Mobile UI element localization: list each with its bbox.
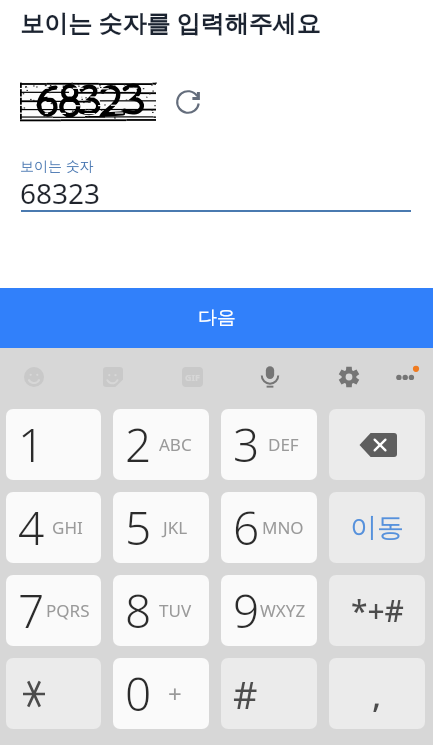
staticText: 2 — [125, 413, 152, 476]
button[interactable]: 2 — [113, 409, 209, 480]
button[interactable] — [6, 658, 101, 729]
staticText: 4 — [18, 496, 45, 559]
button[interactable]: 7 — [6, 575, 101, 646]
staticText: PQRS — [46, 599, 90, 622]
button[interactable]: , — [329, 658, 425, 729]
button[interactable]: Stickers — [91, 358, 135, 396]
staticText: ABC — [159, 433, 192, 456]
staticText: 0 — [125, 662, 152, 725]
staticText: GIF — [185, 371, 200, 383]
staticText: *+# — [351, 590, 404, 631]
staticText: GHI — [52, 516, 83, 539]
button[interactable]: 다음 — [0, 288, 433, 348]
staticText: 보이는 숫자를 입력해주세요 — [20, 6, 321, 39]
staticText: 6 — [233, 496, 260, 559]
button[interactable]: 6 — [221, 492, 317, 563]
button[interactable]: 0 — [113, 658, 209, 729]
button[interactable]: GIF — [170, 358, 214, 396]
button[interactable]: More options — [383, 358, 427, 396]
staticText: , — [372, 672, 382, 718]
button[interactable]: 8 — [113, 575, 209, 646]
button[interactable]: Settings — [327, 358, 371, 396]
staticText: 9 — [233, 579, 260, 642]
button[interactable]: Voice input — [248, 358, 292, 396]
staticText: DEF — [268, 433, 299, 456]
button[interactable]: 1 — [6, 409, 101, 480]
staticText: 8 — [125, 579, 152, 642]
staticText: + — [168, 677, 182, 710]
staticText: 5 — [125, 496, 152, 559]
staticText: JKL — [163, 516, 188, 539]
button[interactable]: *+# — [329, 575, 425, 646]
button[interactable]: Backspace — [329, 409, 425, 480]
staticText: # — [233, 668, 258, 720]
staticText: 다음 — [198, 306, 236, 330]
button[interactable]: Emoji — [12, 358, 56, 396]
staticText: 7 — [18, 579, 45, 642]
staticText: 3 — [233, 413, 260, 476]
staticText: 이동 — [350, 511, 404, 545]
button[interactable]: 3 — [221, 409, 317, 480]
button[interactable]: Refresh captcha — [167, 81, 209, 123]
staticText: MNO — [262, 516, 304, 539]
button[interactable]: 5 — [113, 492, 209, 563]
staticText: TUV — [159, 599, 192, 622]
staticText: WXYZ — [260, 599, 306, 622]
staticText: 68323 — [20, 174, 101, 212]
staticText: 보이는 숫자 — [20, 156, 94, 175]
button[interactable]: # — [221, 658, 317, 729]
staticText: 1 — [18, 413, 45, 476]
button[interactable]: 이동 — [329, 492, 425, 563]
other: Backspace — [329, 409, 425, 480]
button[interactable]: 9 — [221, 575, 317, 646]
button[interactable]: 4 — [6, 492, 101, 563]
